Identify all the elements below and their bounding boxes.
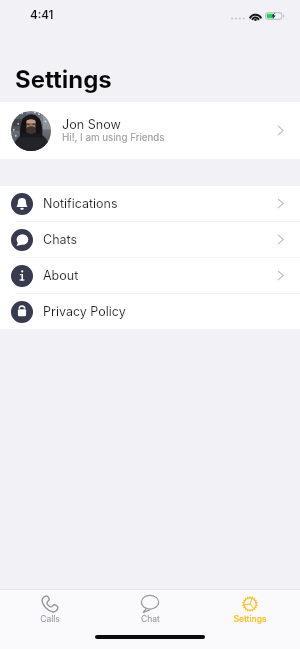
staticText: Hi!, I am using Friends <box>62 132 165 144</box>
button[interactable]: About <box>0 258 300 293</box>
staticText: About <box>43 268 275 283</box>
other: Open profile <box>275 125 286 136</box>
staticText: Jon Snow <box>62 117 121 132</box>
staticText: Settings <box>233 614 267 624</box>
staticText: Settings <box>15 65 112 94</box>
button[interactable]: Calls <box>22 590 78 624</box>
staticText: Privacy Policy <box>43 304 286 319</box>
staticText: Calls <box>40 614 60 624</box>
button[interactable]: Chat <box>122 590 178 624</box>
button[interactable]: Notifications <box>0 186 300 221</box>
button[interactable]: Privacy Policy <box>0 294 300 329</box>
staticText: Chats <box>43 232 275 247</box>
staticText: Chat <box>141 614 160 624</box>
button[interactable]: Chats <box>0 222 300 257</box>
button[interactable]: Settings <box>222 590 278 624</box>
staticText: 4:41 <box>30 8 54 22</box>
staticText: Notifications <box>43 196 275 211</box>
button[interactable]: Jon Snow <box>0 102 300 159</box>
